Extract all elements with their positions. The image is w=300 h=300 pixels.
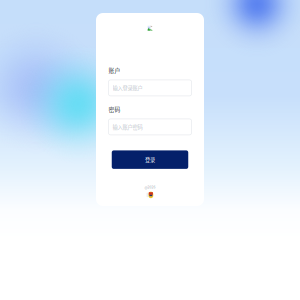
button[interactable]: 登录	[112, 150, 188, 169]
staticText: 登录	[145, 156, 155, 163]
staticText: @2026	[144, 184, 155, 189]
staticText: 输入账户密码	[112, 123, 142, 131]
button[interactable]: 输入登录账户	[108, 80, 191, 96]
staticText: 账户	[108, 66, 120, 74]
staticText: 输入登录账户	[112, 84, 142, 92]
button[interactable]: 输入账户密码	[108, 119, 191, 135]
staticText: 密码	[108, 105, 120, 113]
